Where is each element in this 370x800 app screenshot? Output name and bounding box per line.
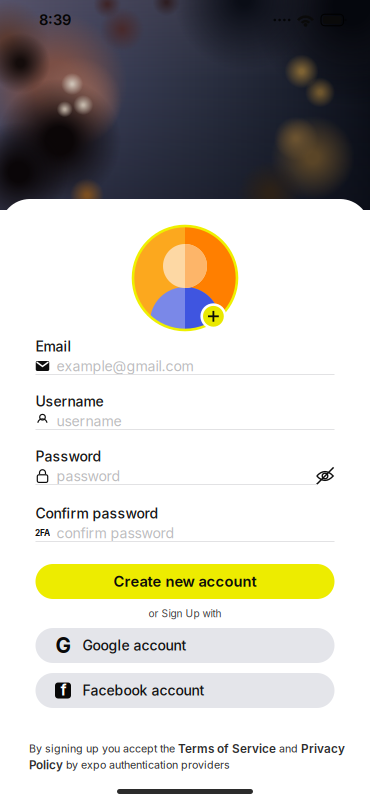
staticText: username	[56, 412, 121, 429]
staticText: Create new account	[113, 573, 256, 590]
staticText: or Sign Up with	[148, 607, 221, 620]
staticText: Privacy	[301, 742, 345, 756]
button[interactable]: Show password	[315, 466, 334, 485]
staticText: and	[276, 742, 301, 755]
staticText: 2FA	[35, 528, 50, 538]
staticText: Confirm password	[35, 505, 158, 522]
button[interactable]: Create new account	[35, 564, 334, 599]
staticText: 8:39	[39, 11, 71, 29]
staticText: f	[60, 681, 66, 699]
button[interactable]: G	[35, 628, 334, 663]
button[interactable]: f	[35, 673, 334, 708]
staticText: Facebook account	[82, 682, 204, 699]
staticText: Google account	[82, 637, 186, 654]
staticText: by expo authentication providers	[63, 758, 230, 771]
staticText: Email	[35, 338, 71, 355]
staticText: By signing up you accept the	[29, 742, 178, 755]
staticText: password	[56, 467, 120, 484]
staticText: G	[55, 633, 70, 658]
staticText: confirm password	[56, 524, 174, 541]
staticText: Policy	[29, 758, 63, 772]
staticText: Terms of Service	[178, 742, 276, 756]
staticText: Username	[35, 393, 103, 410]
staticText: Password	[35, 448, 101, 465]
staticText: example@gmail.com	[56, 357, 193, 374]
